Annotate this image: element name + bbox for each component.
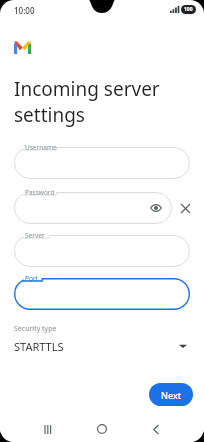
staticText: Port — [25, 274, 38, 283]
staticText: 100 — [184, 6, 193, 13]
button[interactable]: Server — [14, 235, 190, 267]
button[interactable]: Show password — [148, 200, 164, 216]
staticText: Server — [25, 231, 45, 240]
staticText: 10:00 — [14, 5, 35, 16]
button[interactable]: Port — [14, 278, 190, 310]
staticText: Username — [25, 143, 57, 152]
staticText: Next — [161, 389, 182, 401]
button[interactable]: Username — [14, 147, 190, 179]
button[interactable]: Next — [149, 383, 193, 406]
button[interactable]: Security type — [14, 322, 190, 358]
staticText: Incoming server settings — [14, 76, 184, 127]
button[interactable]: Recent apps — [38, 419, 58, 439]
button[interactable]: Password — [14, 192, 172, 224]
staticText: Security type — [14, 324, 57, 334]
button[interactable]: Back — [146, 419, 166, 439]
staticText: Password — [25, 188, 55, 197]
staticText: STARTTLS — [14, 339, 64, 354]
button[interactable]: Clear password — [178, 201, 193, 216]
button[interactable]: Home — [92, 419, 112, 439]
